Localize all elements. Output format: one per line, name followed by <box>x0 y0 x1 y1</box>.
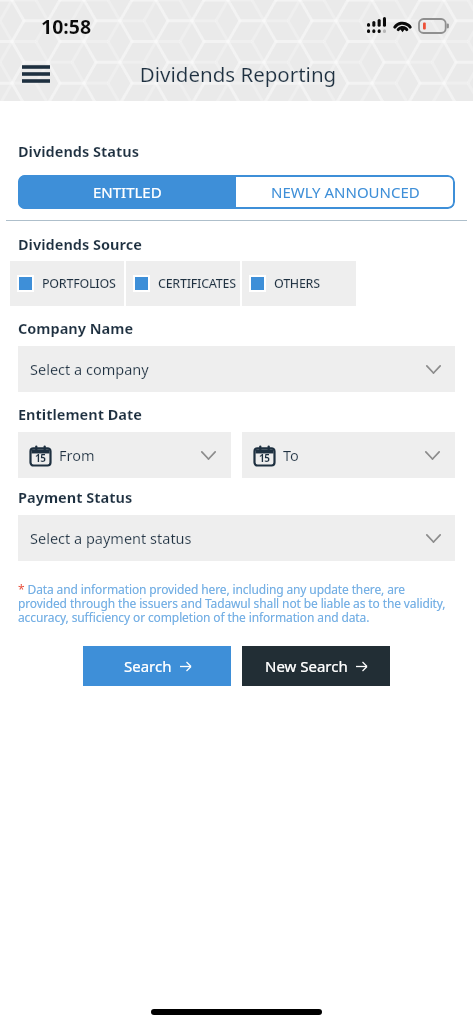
staticText: Dividends Reporting <box>30 60 446 88</box>
button[interactable]: PORTFOLIOS <box>17 261 124 306</box>
staticText: Payment Status <box>18 487 133 507</box>
staticText: OTHERS <box>274 275 320 292</box>
staticText: To <box>283 445 299 465</box>
staticText: From <box>59 445 95 465</box>
button[interactable]: 15 <box>30 432 216 478</box>
button[interactable]: ENTITLED <box>18 175 236 209</box>
button[interactable]: NEWLY ANNOUNCED <box>236 175 455 209</box>
staticText: * Data and information provided here, in… <box>18 581 455 626</box>
staticText: CERTIFICATES <box>158 275 236 292</box>
button[interactable]: New Search <box>242 646 390 686</box>
staticText: 10:58 <box>41 13 92 40</box>
staticText: Select a company <box>30 359 149 379</box>
button[interactable]: Select a company <box>30 346 441 392</box>
staticText: Select a payment status <box>30 528 192 548</box>
button[interactable]: Open navigation menu <box>15 53 57 95</box>
staticText: 15 <box>259 451 270 465</box>
button[interactable]: Search <box>83 646 231 686</box>
staticText: Dividends Status <box>18 141 139 161</box>
staticText: Dividends Source <box>18 234 142 254</box>
button[interactable]: CERTIFICATES <box>133 261 240 306</box>
staticText: Company Name <box>18 318 134 338</box>
staticText: Entitlement Date <box>18 404 142 424</box>
button[interactable]: OTHERS <box>249 261 356 306</box>
staticText: 15 <box>35 451 46 465</box>
staticText: Search <box>124 656 172 676</box>
staticText: NEWLY ANNOUNCED <box>271 182 420 202</box>
staticText: ENTITLED <box>93 182 162 202</box>
button[interactable]: 15 <box>254 432 440 478</box>
button[interactable]: Select a payment status <box>30 515 441 561</box>
staticText: PORTFOLIOS <box>42 275 116 292</box>
staticText: New Search <box>265 656 348 676</box>
